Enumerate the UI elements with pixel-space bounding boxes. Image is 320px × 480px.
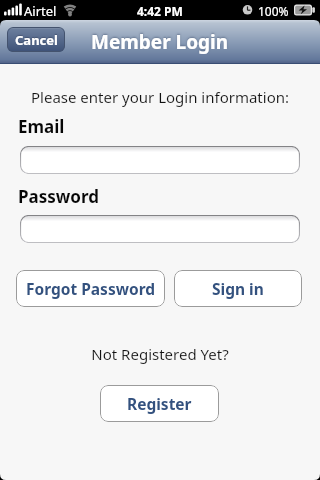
staticText: Password	[18, 185, 99, 208]
button[interactable]: Cancel	[7, 27, 65, 52]
button[interactable]: Register	[100, 385, 219, 422]
staticText: Cancel	[15, 31, 58, 49]
staticText: Airtel	[24, 2, 57, 20]
button[interactable]	[20, 146, 300, 174]
staticText: Email	[18, 115, 65, 138]
staticText: Please enter your Login information:	[0, 87, 320, 107]
staticText: 4:42 PM	[137, 3, 183, 19]
button[interactable]: Sign in	[174, 270, 302, 307]
button[interactable]: Forgot Password	[16, 270, 165, 307]
button[interactable]	[20, 215, 300, 243]
staticText: Member Login	[91, 29, 229, 55]
staticText: Not Registered Yet?	[0, 344, 320, 364]
staticText: Register	[127, 393, 192, 414]
staticText: Sign in	[212, 278, 264, 299]
staticText: 100%	[258, 3, 289, 19]
staticText: Forgot Password	[26, 278, 156, 299]
